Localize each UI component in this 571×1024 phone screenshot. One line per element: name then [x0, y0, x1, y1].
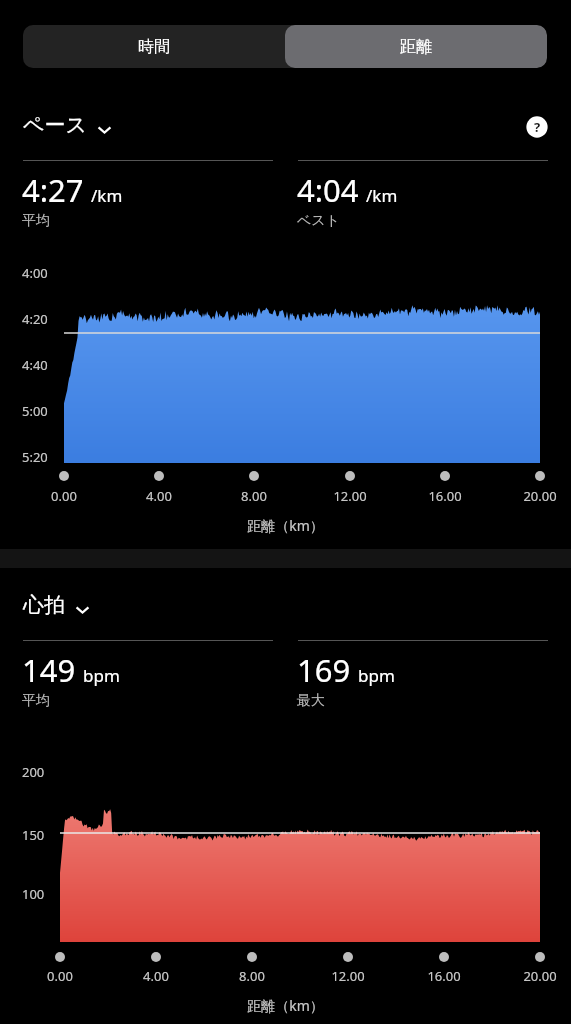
staticText: ペース — [23, 112, 87, 138]
staticText: 200 — [22, 763, 45, 781]
staticText: /km — [91, 184, 123, 207]
staticText: 平均 — [22, 212, 50, 230]
staticText: 5:00 — [22, 402, 48, 420]
button[interactable]: 時間 — [23, 25, 285, 68]
button[interactable]: 心拍 — [23, 592, 91, 618]
staticText: 距離（km） — [0, 516, 571, 535]
staticText: 12.00 — [324, 487, 376, 505]
button[interactable]: ペース — [23, 112, 113, 138]
staticText: 20.00 — [514, 967, 566, 985]
staticText: 150 — [22, 826, 45, 844]
staticText: 8.00 — [226, 967, 278, 985]
staticText: 最大 — [297, 692, 325, 710]
staticText: 12.00 — [322, 967, 374, 985]
staticText: 距離 — [400, 37, 432, 57]
staticText: 心拍 — [23, 592, 65, 618]
button[interactable]: ヘルプ — [523, 113, 551, 141]
staticText: 16.00 — [419, 487, 471, 505]
staticText: 4.00 — [133, 487, 185, 505]
staticText: 4:00 — [22, 264, 48, 282]
button[interactable]: 距離 — [285, 25, 547, 68]
staticText: 100 — [22, 885, 45, 903]
staticText: ? — [534, 118, 541, 136]
staticText: 4:20 — [22, 310, 48, 328]
staticText: 4:40 — [22, 356, 48, 374]
staticText: /km — [366, 184, 398, 207]
staticText: ベスト — [297, 212, 340, 230]
staticText: 5:20 — [22, 448, 48, 466]
staticText: 8.00 — [228, 487, 280, 505]
staticText: 149 — [22, 649, 76, 691]
staticText: 169 — [297, 649, 351, 691]
staticText: 16.00 — [418, 967, 470, 985]
staticText: 0.00 — [38, 487, 90, 505]
staticText: 平均 — [22, 692, 50, 710]
staticText: 4.00 — [130, 967, 182, 985]
staticText: 20.00 — [514, 487, 566, 505]
staticText: bpm — [83, 664, 120, 687]
staticText: 4:04 — [297, 169, 359, 211]
staticText: 0.00 — [34, 967, 86, 985]
staticText: bpm — [358, 664, 395, 687]
staticText: 4:27 — [22, 169, 84, 211]
staticText: 時間 — [138, 37, 170, 57]
staticText: 距離（km） — [0, 996, 571, 1015]
